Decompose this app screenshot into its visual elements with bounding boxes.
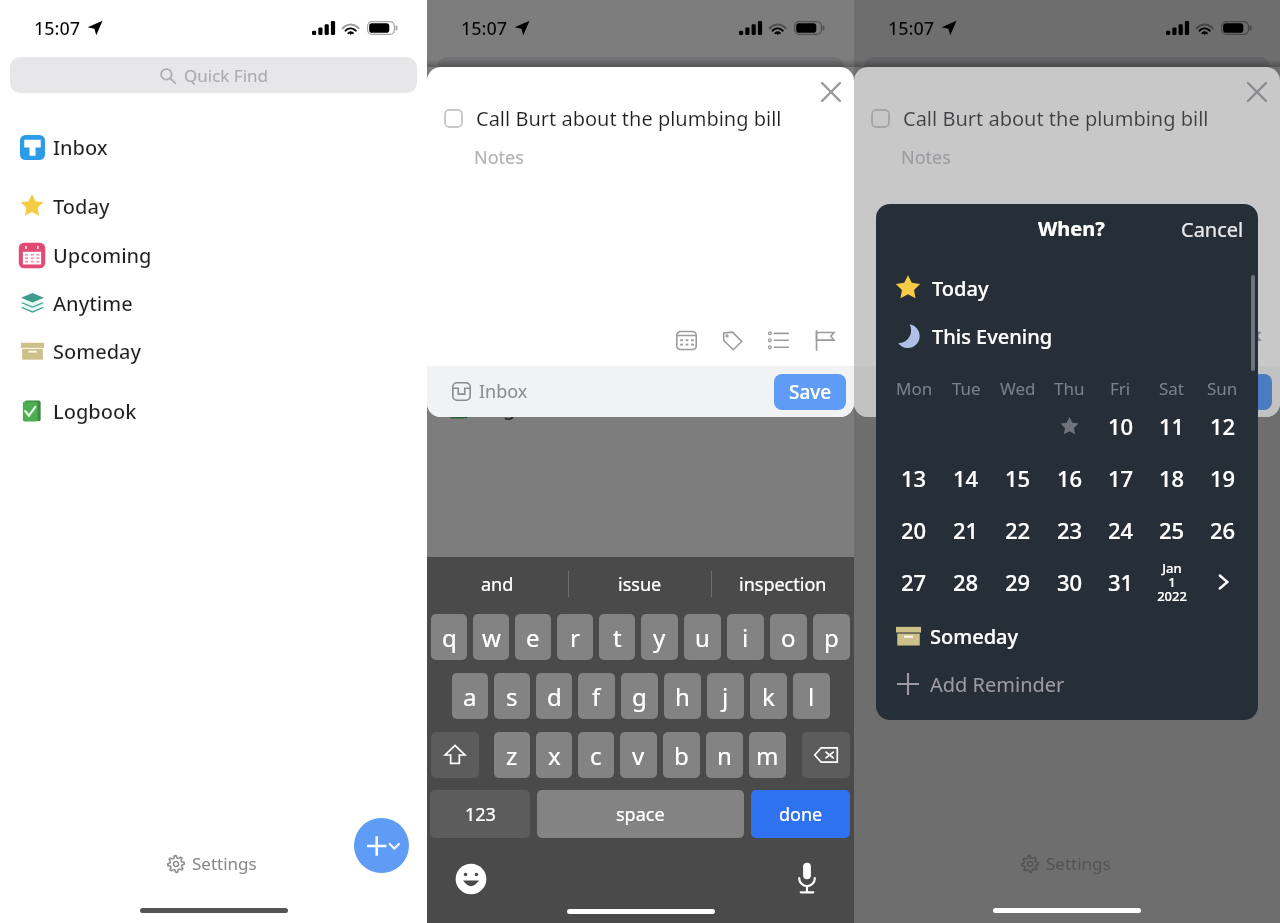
button[interactable]: Deadline <box>806 322 842 358</box>
button[interactable]: Close <box>812 73 850 111</box>
button[interactable]: z <box>494 732 530 778</box>
button[interactable]: u <box>684 614 721 660</box>
button[interactable]: 15 <box>992 452 1044 504</box>
staticText: Save <box>1215 379 1258 405</box>
button[interactable]: Cancel <box>1173 208 1252 251</box>
button[interactable]: Upcoming <box>0 231 427 279</box>
button[interactable]: Complete <box>871 109 890 128</box>
button[interactable]: Quick Find <box>10 57 417 93</box>
button[interactable]: Save <box>774 374 846 410</box>
button[interactable]: s <box>494 673 530 719</box>
button[interactable]: Add Reminder <box>876 663 1258 705</box>
button[interactable]: inspection <box>712 557 854 611</box>
button[interactable]: Save <box>1200 374 1272 410</box>
button[interactable]: Deadline <box>1232 322 1268 358</box>
staticText: Thu <box>1054 377 1085 400</box>
button[interactable]: 13 <box>888 452 940 504</box>
button[interactable]: Checklist <box>760 322 796 358</box>
button[interactable]: 30 <box>1044 556 1095 608</box>
button[interactable]: Next month <box>1197 556 1248 608</box>
button[interactable]: Jan 1 2022 <box>1146 556 1197 608</box>
button[interactable]: f <box>578 673 615 719</box>
button[interactable]: h <box>664 673 701 719</box>
button[interactable]: 24 <box>1095 504 1146 556</box>
button[interactable]: 10 <box>1095 400 1146 452</box>
button[interactable]: Someday <box>876 615 1258 657</box>
button[interactable]: b <box>663 732 700 778</box>
button[interactable]: 12 <box>1197 400 1248 452</box>
button[interactable]: 28 <box>940 556 992 608</box>
button[interactable]: p <box>813 614 850 660</box>
button[interactable]: and <box>427 557 568 611</box>
button[interactable]: g <box>621 673 658 719</box>
button[interactable]: 14 <box>940 452 992 504</box>
button[interactable]: l <box>793 673 830 719</box>
button[interactable]: e <box>515 614 551 660</box>
button[interactable]: v <box>620 732 657 778</box>
staticText: o <box>781 621 796 654</box>
button[interactable]: Someday <box>0 327 427 375</box>
button[interactable]: 11 <box>1146 400 1197 452</box>
button[interactable]: Inbox <box>427 373 536 410</box>
button[interactable]: Close <box>1238 73 1276 111</box>
staticText: q <box>442 621 457 654</box>
button[interactable]: x <box>536 732 572 778</box>
button[interactable]: o <box>770 614 807 660</box>
button[interactable]: 25 <box>1146 504 1197 556</box>
button[interactable]: 26 <box>1197 504 1248 556</box>
button[interactable]: Backspace <box>802 732 850 778</box>
button[interactable]: 22 <box>992 504 1044 556</box>
button[interactable]: This Evening <box>876 315 1258 357</box>
button[interactable]: Settings <box>161 846 263 881</box>
button[interactable]: 18 <box>1146 452 1197 504</box>
button[interactable]: a <box>452 673 488 719</box>
button[interactable]: i <box>727 614 764 660</box>
button[interactable]: issue <box>569 557 711 611</box>
button[interactable]: 29 <box>992 556 1044 608</box>
button[interactable]: m <box>749 732 786 778</box>
button[interactable]: 19 <box>1197 452 1248 504</box>
staticText: and <box>481 572 514 597</box>
button[interactable]: Tags <box>714 322 750 358</box>
button[interactable]: Inbox <box>0 123 427 171</box>
button[interactable]: j <box>707 673 744 719</box>
button[interactable]: Today <box>1044 400 1095 452</box>
button[interactable]: done <box>751 790 850 838</box>
button[interactable]: k <box>750 673 787 719</box>
button[interactable]: d <box>536 673 572 719</box>
button[interactable]: c <box>578 732 614 778</box>
button[interactable]: 21 <box>940 504 992 556</box>
button[interactable]: Settings <box>1015 846 1117 881</box>
button[interactable]: 23 <box>1044 504 1095 556</box>
button[interactable]: 16 <box>1044 452 1095 504</box>
button[interactable]: Today <box>876 267 1258 309</box>
button[interactable]: Emoji <box>454 862 488 896</box>
staticText: Logbook <box>480 394 564 421</box>
staticText: m <box>756 739 779 772</box>
button[interactable]: space <box>537 790 744 838</box>
button[interactable]: w <box>473 614 509 660</box>
button[interactable]: y <box>641 614 678 660</box>
button[interactable]: Complete <box>444 109 463 128</box>
button[interactable]: 27 <box>888 556 940 608</box>
button[interactable]: Shift <box>431 732 479 778</box>
staticText: Upcoming <box>53 242 152 269</box>
button[interactable]: Anytime <box>0 279 427 327</box>
button[interactable]: 20 <box>888 504 940 556</box>
button[interactable]: q <box>431 614 467 660</box>
button[interactable]: 31 <box>1095 556 1146 608</box>
button[interactable]: When <box>668 322 704 358</box>
button[interactable]: t <box>599 614 635 660</box>
button[interactable]: r <box>557 614 593 660</box>
button[interactable]: n <box>706 732 743 778</box>
button[interactable]: New To-Do <box>354 818 409 873</box>
button[interactable]: 123 <box>430 790 530 838</box>
button[interactable]: Logbook <box>0 387 427 435</box>
button[interactable]: 17 <box>1095 452 1146 504</box>
button[interactable]: Dictate <box>790 861 824 895</box>
button[interactable]: Today <box>0 182 427 230</box>
button[interactable]: Inbox <box>854 373 963 410</box>
